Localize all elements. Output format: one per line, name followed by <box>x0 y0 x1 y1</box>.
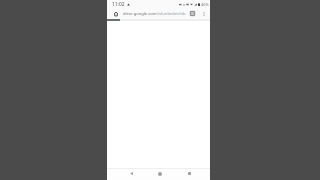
staticText: drive.google.com <box>123 11 157 17</box>
button[interactable]: Home <box>111 9 120 18</box>
staticText: 11:02 <box>112 1 125 8</box>
button[interactable]: Recent apps <box>185 169 194 178</box>
button[interactable]: Home <box>155 169 164 178</box>
staticText: /a/unlockm/nb <box>157 11 186 17</box>
button[interactable]: More options <box>199 9 208 18</box>
staticText: 46% <box>201 2 209 7</box>
button[interactable]: Back <box>127 169 136 178</box>
button[interactable]: Switch tabs <box>188 9 197 18</box>
